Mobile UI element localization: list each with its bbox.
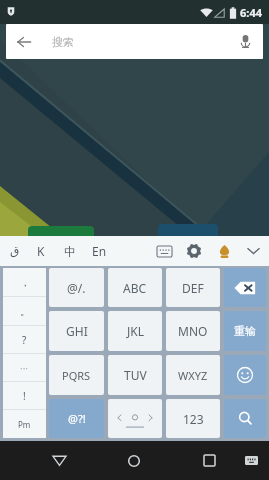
button[interactable]: emoji [224, 355, 266, 395]
staticText: Pm [18, 419, 31, 430]
staticText: @/. [67, 280, 86, 296]
staticText: En [92, 243, 107, 259]
button[interactable]: Hide keyboard [236, 441, 266, 480]
button[interactable]: Recents [191, 441, 227, 480]
staticText: GHI [66, 323, 88, 339]
button[interactable]: Keyboard layout [149, 236, 179, 266]
button[interactable]: 重输 [224, 311, 266, 351]
button[interactable]: Back [6, 24, 263, 59]
staticText: 搜索 [52, 35, 74, 49]
staticText: 中 [64, 244, 76, 259]
staticText: 。 [20, 305, 30, 318]
button[interactable]: ABC [108, 268, 162, 307]
staticText: WXYZ [178, 368, 208, 383]
button[interactable]: TUV [108, 355, 162, 395]
button[interactable]: MNO [166, 311, 220, 351]
button[interactable]: JKL [108, 311, 162, 351]
button[interactable]: GHI [49, 311, 104, 351]
staticText: MNO [178, 323, 208, 339]
staticText: ， [20, 276, 30, 289]
staticText: ! [23, 389, 26, 403]
button[interactable]: PQRS [49, 355, 104, 395]
button[interactable]: @/. [49, 268, 104, 307]
button[interactable]: ··· [3, 354, 46, 382]
staticText: ? [22, 333, 27, 347]
staticText: JKL [127, 323, 144, 339]
staticText: ق [10, 244, 20, 258]
button[interactable]: Back [41, 441, 77, 480]
button[interactable]: 。 [3, 297, 46, 326]
button[interactable]: ? [3, 326, 46, 354]
button[interactable]: search [224, 399, 266, 438]
staticText: PQRS [62, 368, 91, 383]
button[interactable]: Back [6, 24, 42, 59]
button[interactable]: En [84, 236, 114, 266]
staticText: ABC [123, 280, 147, 296]
button[interactable]: Settings [179, 236, 209, 266]
button[interactable]: Voice search [227, 24, 263, 59]
staticText: @?! [68, 411, 86, 426]
staticText: K [37, 243, 45, 259]
staticText: TUV [124, 367, 147, 383]
button[interactable]: ! [3, 382, 46, 410]
button[interactable]: Home [116, 441, 152, 480]
button[interactable]: 123 [166, 399, 220, 438]
button[interactable]: ق [2, 236, 27, 266]
button[interactable]: Pm [3, 410, 46, 438]
button[interactable]: DEF [166, 268, 220, 307]
button[interactable]: Theme [209, 236, 239, 266]
button[interactable]: Hide keyboard [239, 236, 267, 266]
staticText: DEF [182, 280, 204, 296]
staticText: ··· [20, 361, 29, 375]
button[interactable]: del [224, 268, 266, 307]
button[interactable]: space [108, 399, 162, 438]
button[interactable]: K [27, 236, 55, 266]
staticText: 6:44 [240, 5, 262, 20]
button[interactable]: 中 [55, 236, 84, 266]
staticText: 123 [183, 411, 204, 427]
button[interactable]: ， [3, 268, 46, 297]
staticText: 重输 [234, 324, 256, 338]
button[interactable]: @?! [49, 399, 104, 438]
button[interactable]: WXYZ [166, 355, 220, 395]
